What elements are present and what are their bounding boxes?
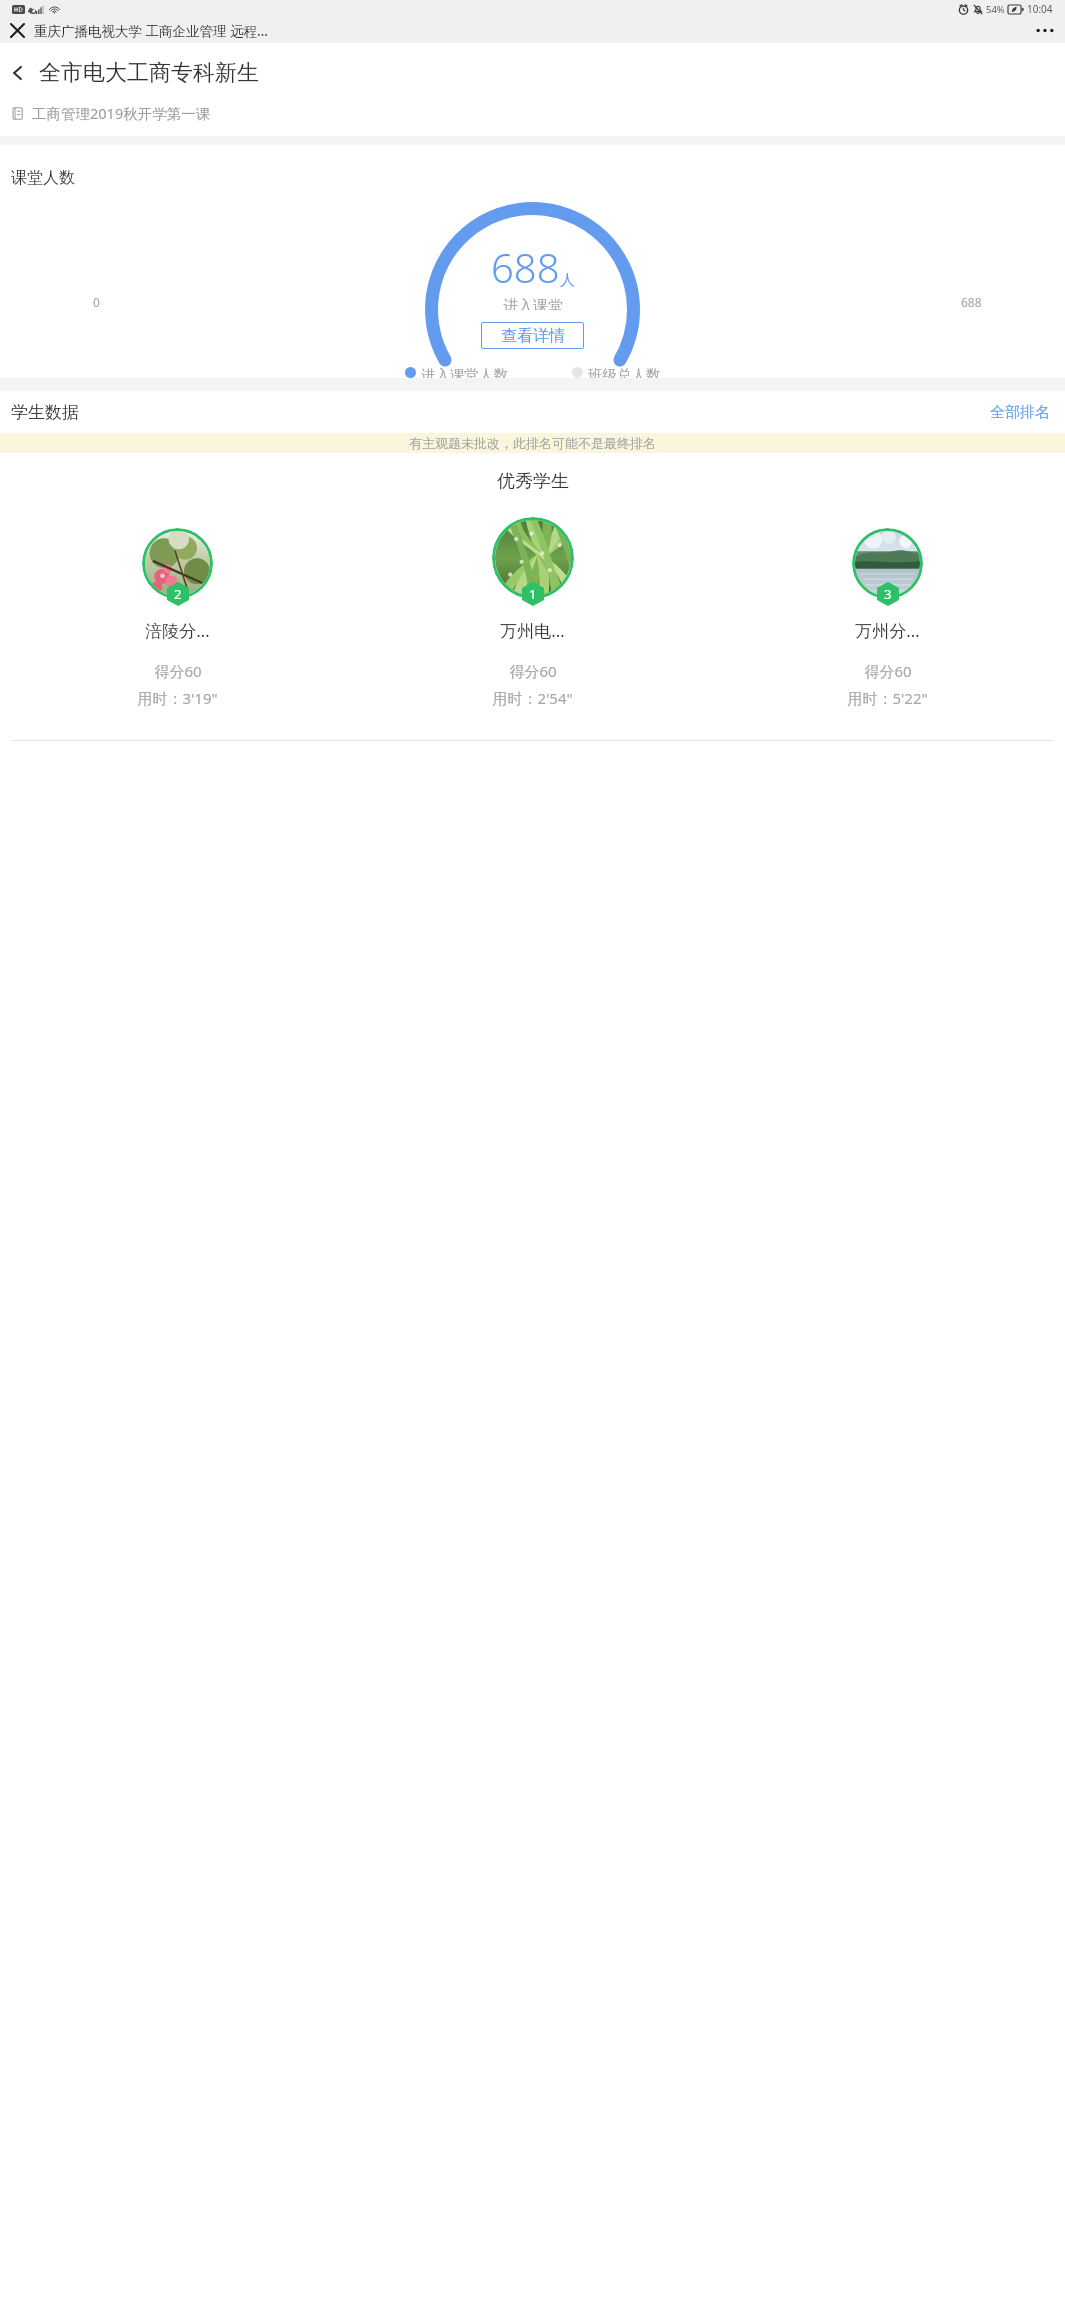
button[interactable]: 1 [355,517,710,708]
staticText: 全市电大工商专科新生 [39,59,259,87]
staticText: 10:04 [1027,2,1053,16]
staticText: 涪陵分… [145,619,210,642]
staticText: 课堂人数 [11,168,75,188]
button[interactable]: Back [0,43,1065,103]
staticText: 54% [986,3,1005,16]
staticText: 用时：3'19" [137,688,218,708]
staticText: 3 [884,585,892,603]
staticText: 万州分… [855,619,920,642]
staticText: 用时：2'54" [492,688,573,708]
button[interactable]: 3 [710,517,1065,708]
button[interactable]: 全部排名 [986,399,1054,426]
staticText: 优秀学生 [497,470,569,493]
staticText: 全部排名 [990,403,1050,422]
button[interactable]: 查看详情 [481,322,584,349]
staticText: 人 [560,271,575,290]
button[interactable]: Close [0,18,34,43]
staticText: 查看详情 [501,326,565,346]
staticText: 用时：5'22" [847,688,928,708]
staticText: 进入课堂 [503,297,563,310]
staticText: 688 [491,240,560,294]
staticText: 1 [529,585,537,603]
staticText: 万州电… [500,619,565,642]
staticText: 进入课堂人数 [421,366,508,378]
staticText: 得分60 [509,661,557,681]
staticText: 得分60 [154,661,202,681]
staticText: 688 [961,294,982,310]
staticText: 重庆广播电视大学 工商企业管理 远程… [34,22,1025,40]
button[interactable]: More options [1025,18,1065,43]
staticText: 2 [174,585,182,603]
staticText: 学生数据 [11,402,986,423]
staticText: 0 [93,294,100,310]
staticText: 有主观题未批改，此排名可能不是最终排名 [409,435,656,451]
button[interactable]: 2 [0,517,355,708]
staticText: 工商管理2019秋开学第一课 [32,103,211,123]
staticText: 得分60 [864,661,912,681]
staticText: 班级总人数 [588,366,661,378]
